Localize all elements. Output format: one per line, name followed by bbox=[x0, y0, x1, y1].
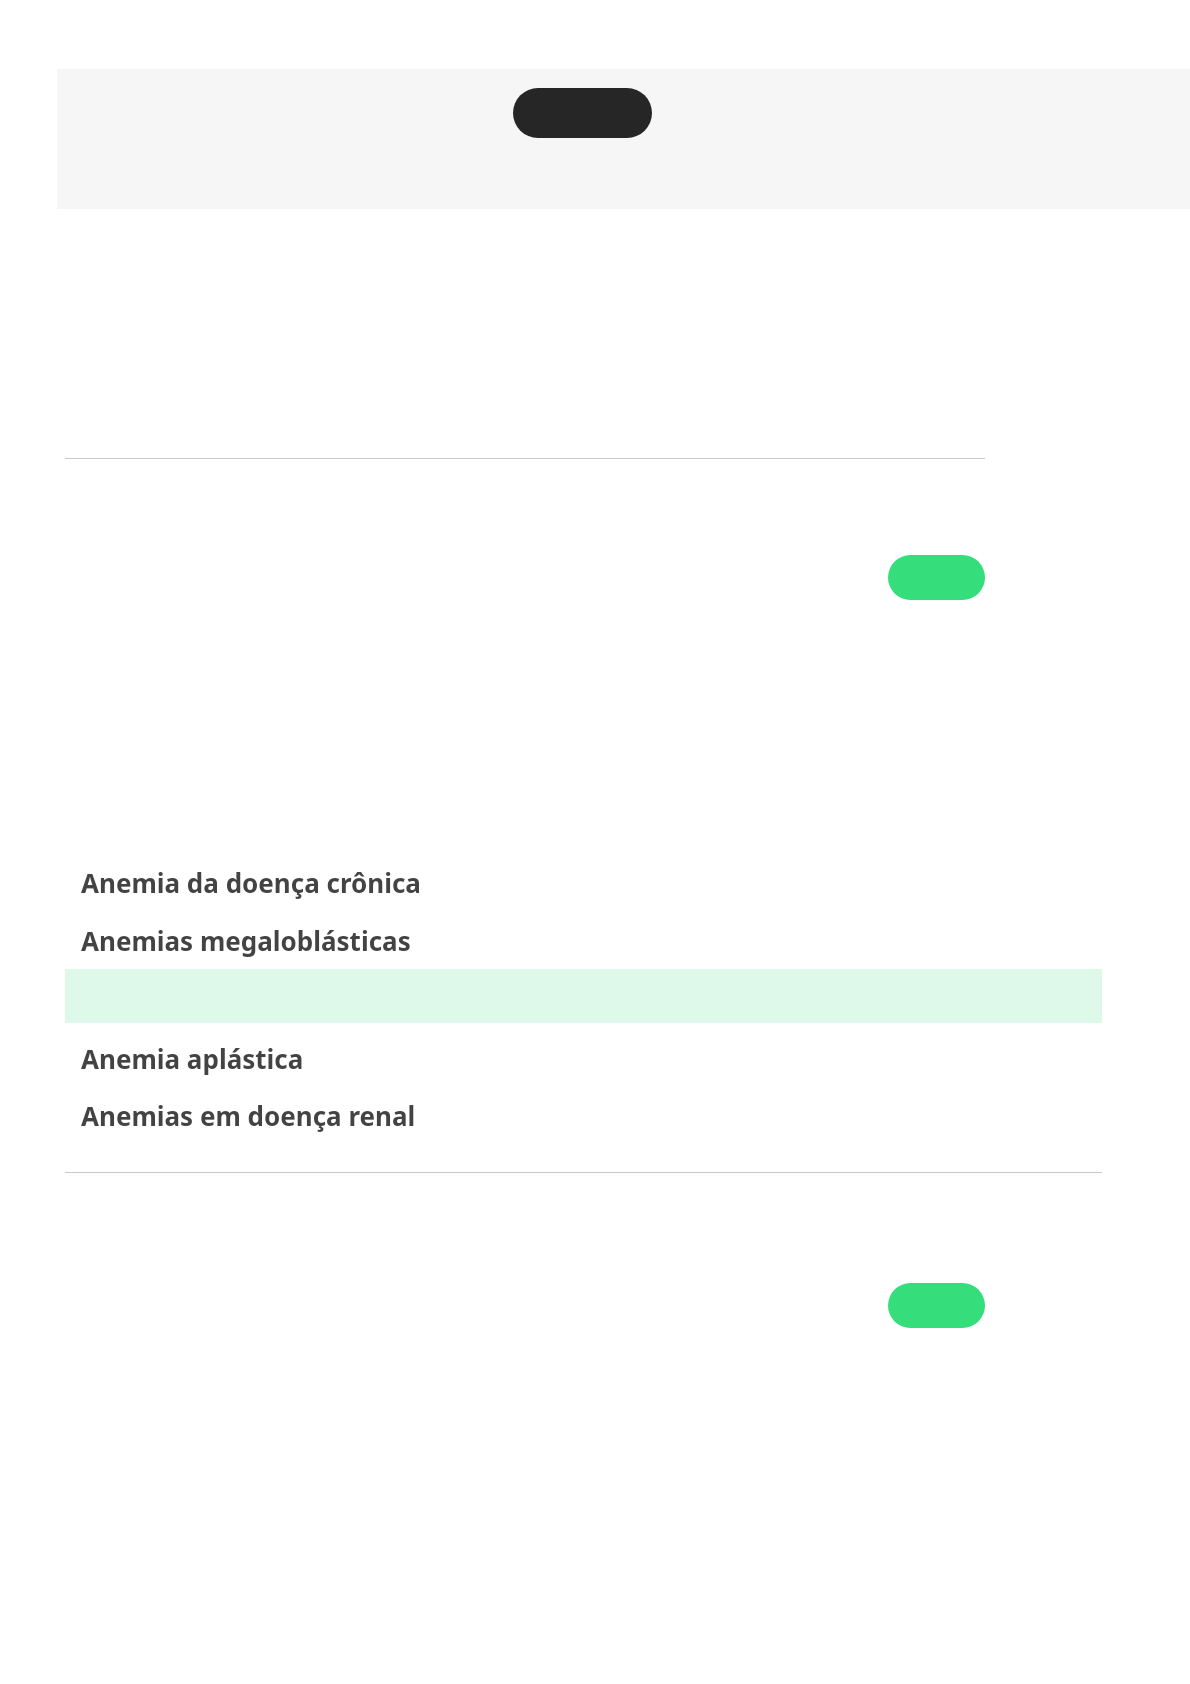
button[interactable]: Secondary action bbox=[888, 1283, 985, 1328]
button[interactable]: Anemia da doença crônica bbox=[81, 862, 701, 902]
button[interactable]: Anemias megaloblásticas bbox=[81, 920, 701, 960]
button[interactable]: Menu bbox=[513, 88, 652, 138]
staticText: Anemia aplástica bbox=[81, 1041, 304, 1076]
staticText: Anemias em doença renal bbox=[81, 1098, 416, 1133]
staticText: Anemia da doença crônica bbox=[81, 865, 421, 900]
button[interactable]: Anemias em doença renal bbox=[81, 1095, 701, 1135]
staticText: Anemias megaloblásticas bbox=[81, 923, 411, 958]
button[interactable]: Anemia aplástica bbox=[81, 1038, 701, 1078]
button[interactable]: Primary action bbox=[888, 555, 985, 600]
